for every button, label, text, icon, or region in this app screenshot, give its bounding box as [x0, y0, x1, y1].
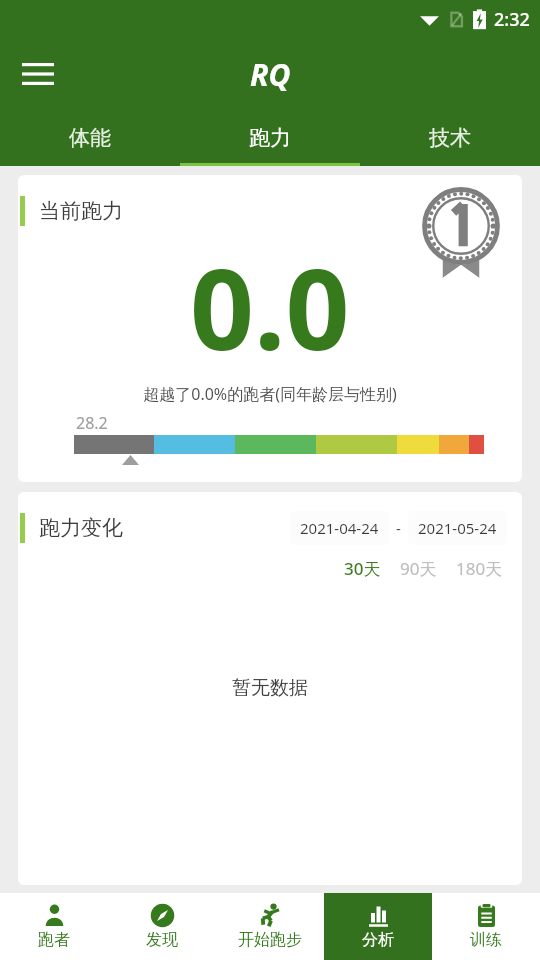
staticText: 技术: [429, 125, 471, 151]
staticText: 2021-05-24: [418, 518, 497, 538]
button[interactable]: 分析: [324, 893, 432, 960]
button[interactable]: 2021-05-24: [408, 511, 507, 545]
staticText: 跑力变化: [39, 515, 123, 541]
staticText: 180天: [456, 557, 503, 580]
staticText: 0.0: [190, 230, 350, 383]
button[interactable]: 开始跑步: [216, 893, 324, 960]
staticText: 分析: [362, 930, 394, 950]
staticText: 发现: [146, 930, 178, 950]
staticText: 体能: [69, 125, 111, 151]
staticText: 超越了0.0%的跑者(同年龄层与性别): [18, 383, 522, 405]
button[interactable]: 当前跑力: [18, 175, 522, 482]
staticText: 跑者: [38, 930, 70, 950]
staticText: 30天: [344, 557, 381, 580]
button[interactable]: 90天: [398, 555, 439, 582]
button[interactable]: 训练: [432, 893, 540, 960]
button[interactable]: 30天: [342, 555, 383, 582]
staticText: -: [396, 518, 401, 538]
button[interactable]: 技术: [360, 110, 540, 166]
staticText: 2:32: [494, 7, 530, 32]
button[interactable]: 跑力: [180, 110, 360, 166]
staticText: 当前跑力: [39, 198, 123, 224]
staticText: 2021-04-24: [300, 518, 379, 538]
button[interactable]: Open navigation menu: [12, 48, 64, 100]
button[interactable]: 2021-04-24: [290, 511, 389, 545]
staticText: 90天: [400, 557, 437, 580]
staticText: 暂无数据: [232, 676, 308, 700]
staticText: RQ: [250, 54, 291, 95]
staticText: 开始跑步: [238, 930, 302, 950]
button[interactable]: 发现: [108, 893, 216, 960]
staticText: 28.2: [76, 412, 108, 434]
button[interactable]: 跑者: [0, 893, 108, 960]
button[interactable]: 180天: [454, 555, 505, 582]
button[interactable]: 体能: [0, 110, 180, 166]
staticText: 跑力: [249, 125, 291, 151]
staticText: 训练: [470, 930, 502, 950]
